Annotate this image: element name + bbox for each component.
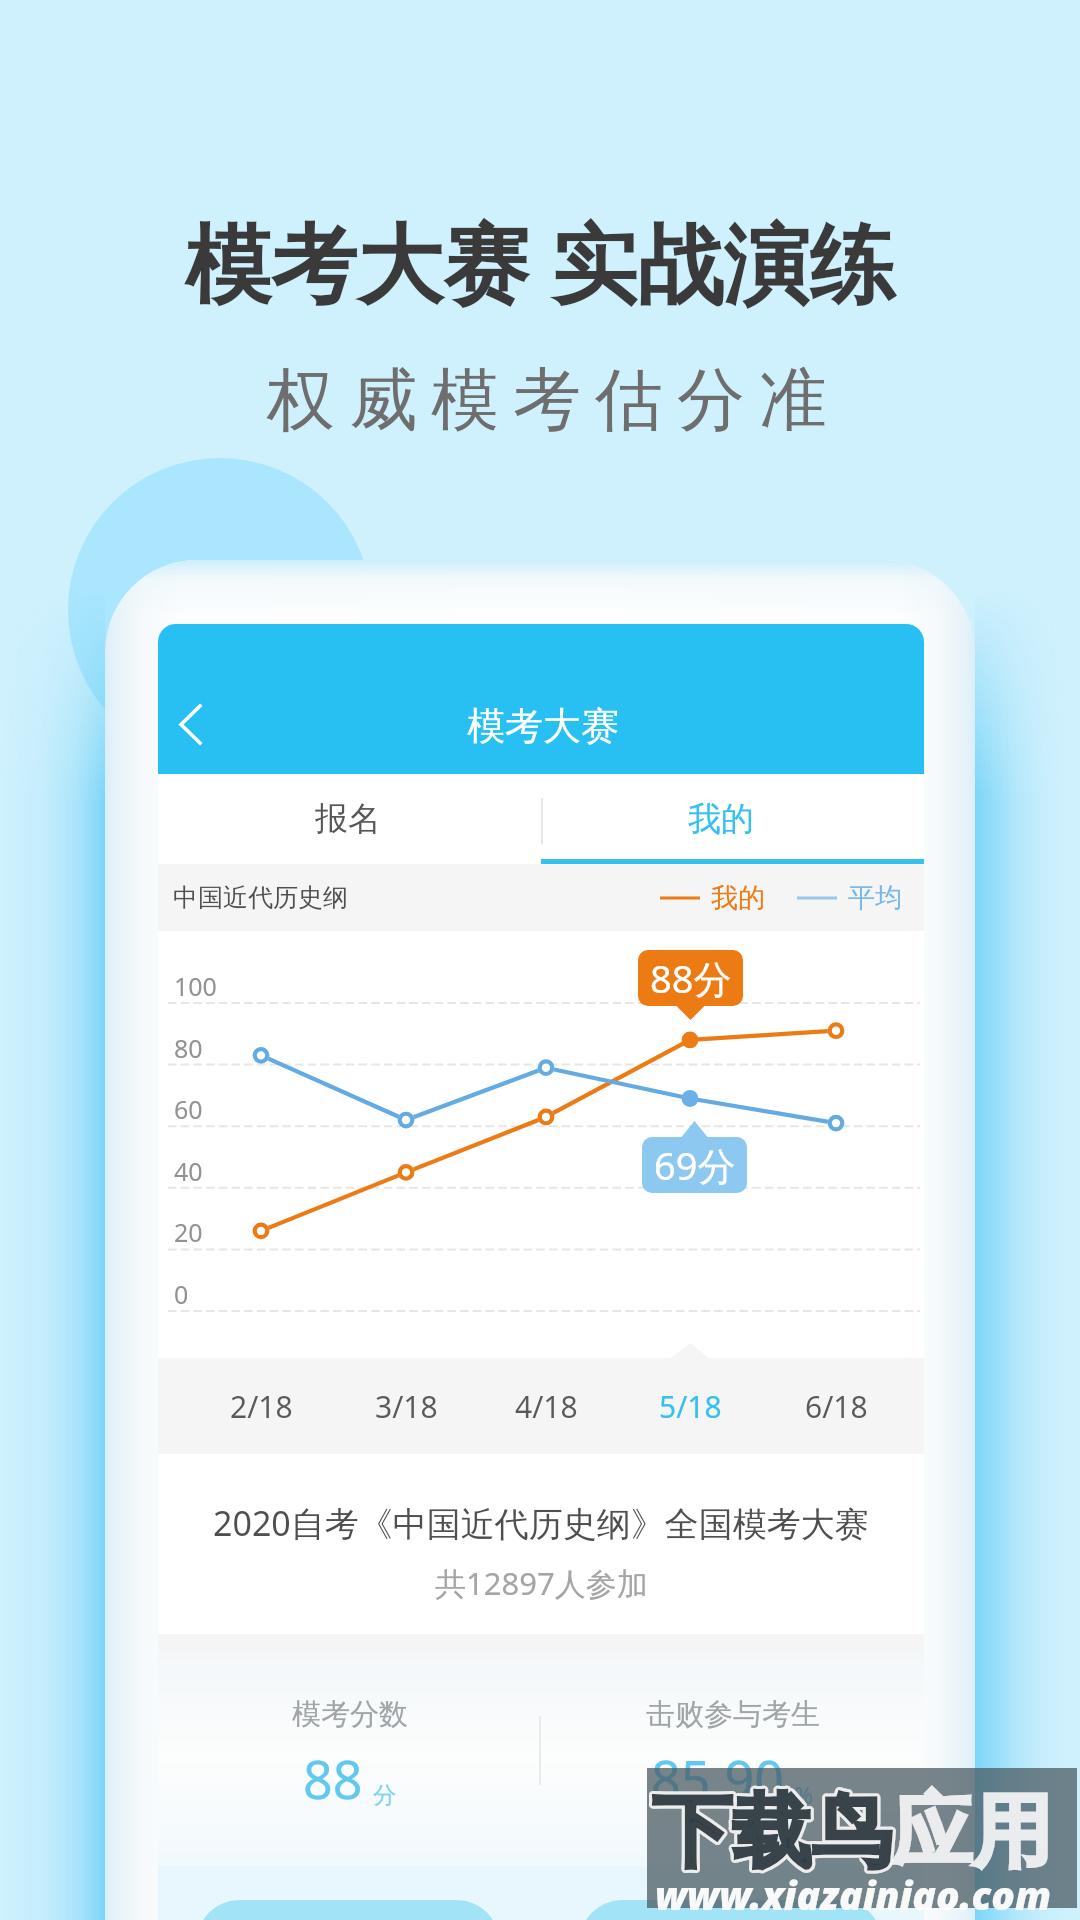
staticText: 20 (174, 1215, 203, 1249)
staticText: 40 (174, 1154, 203, 1188)
staticText: 模考大赛 (467, 702, 619, 750)
staticText: 击败参与考生 (646, 1696, 820, 1733)
staticText: 2/18 (230, 1386, 293, 1427)
staticText: 2020自考《中国近代历史纲》全国模考大赛 (213, 1500, 869, 1546)
staticText: 中国近代历史纲 (173, 882, 348, 913)
button[interactable]: 击败参与考生 (541, 1696, 924, 1814)
button[interactable]: 5/18 (630, 1358, 750, 1454)
staticText: 0 (174, 1277, 189, 1311)
staticText: 模考大赛 实战演练 (185, 203, 896, 320)
staticText: www.xiazainiao.com (655, 1868, 1052, 1920)
staticText: 权威模考估分准 (260, 358, 834, 444)
button[interactable]: 3/18 (346, 1358, 466, 1454)
staticText: 69分 (654, 1139, 736, 1191)
staticText: 我的 (711, 881, 765, 915)
staticText: 88 (303, 1743, 363, 1814)
staticText: 模考分数 (292, 1696, 408, 1733)
staticText: 88分 (650, 952, 732, 1004)
button[interactable]: 2/18 (201, 1358, 321, 1454)
staticText: 下载鸟 (652, 1782, 892, 1883)
staticText: 我的 (688, 798, 754, 840)
staticText: 100 (174, 969, 217, 1003)
button[interactable]: Back (158, 684, 238, 764)
staticText: 分 (373, 1781, 396, 1810)
staticText: 5/18 (659, 1386, 722, 1427)
button[interactable]: 数据报告 (197, 1900, 499, 1920)
staticText: 应用 (892, 1782, 1052, 1883)
staticText: 60 (174, 1092, 203, 1126)
staticText: 下载鸟 (652, 1782, 892, 1883)
staticText: 共12897人参加 (435, 1562, 648, 1604)
button[interactable]: 6/18 (776, 1358, 896, 1454)
button[interactable]: 考点解析 (580, 1900, 882, 1920)
staticText: 3/18 (375, 1386, 438, 1427)
button[interactable]: 报名 (158, 774, 541, 864)
staticText: 报名 (315, 798, 381, 840)
button[interactable]: 模考分数 (158, 1696, 541, 1814)
staticText: 85.90 (651, 1743, 784, 1814)
staticText: 4/18 (515, 1386, 578, 1427)
button[interactable]: 我的 (541, 774, 924, 864)
staticText: % (794, 1779, 814, 1810)
staticText: 6/18 (805, 1386, 868, 1427)
staticText: 平均 (848, 881, 902, 915)
button[interactable]: 4/18 (486, 1358, 606, 1454)
staticText: 80 (174, 1031, 203, 1065)
